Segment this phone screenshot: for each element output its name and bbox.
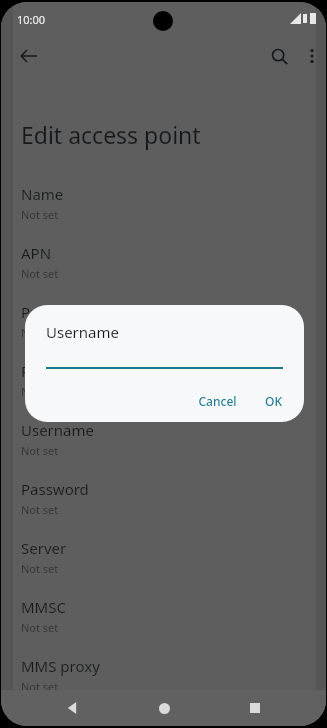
staticText: Username (46, 322, 119, 342)
staticText: Not set (21, 561, 59, 576)
staticText: Not set (21, 443, 59, 458)
button[interactable]: Password (1, 469, 326, 528)
button[interactable]: Proxy (1, 292, 326, 351)
button[interactable]: Name (1, 174, 326, 233)
staticText: MMS proxy (21, 656, 100, 676)
staticText: Not set (21, 620, 59, 635)
button[interactable]: MMS port (1, 705, 326, 726)
button[interactable]: APN (1, 233, 326, 292)
staticText: Proxy (21, 302, 61, 322)
staticText: Not set (21, 207, 59, 222)
staticText: Not set (21, 502, 59, 517)
staticText: MMSC (21, 597, 66, 617)
staticText: OK (265, 393, 282, 409)
button[interactable]: Server (1, 528, 326, 587)
button[interactable]: Recents (235, 690, 275, 726)
staticText: Cancel (198, 393, 237, 409)
staticText: 10:00 (17, 12, 46, 27)
staticText: Password (21, 479, 89, 499)
staticText: Not set (21, 384, 59, 399)
staticText: Server (21, 538, 67, 558)
staticText: Not set (21, 266, 59, 281)
button[interactable]: OK (255, 387, 292, 415)
button[interactable]: Search (261, 38, 297, 74)
staticText: Not set (21, 325, 59, 340)
button[interactable]: Home (144, 690, 184, 726)
staticText: Edit access point (21, 119, 201, 150)
staticText: Name (21, 184, 64, 204)
button[interactable]: Username (1, 410, 326, 469)
button[interactable]: MMSC (1, 587, 326, 646)
button[interactable]: MMS proxy (1, 646, 326, 705)
button[interactable]: More options (294, 38, 326, 74)
staticText: Not set (21, 679, 59, 694)
button[interactable]: Cancel (188, 387, 247, 415)
button[interactable]: Back (11, 38, 47, 74)
button[interactable]: Back (52, 690, 92, 726)
staticText: Port (21, 361, 51, 381)
button[interactable]: Port (1, 351, 326, 410)
staticText: Username (21, 420, 94, 440)
staticText: APN (21, 243, 52, 263)
